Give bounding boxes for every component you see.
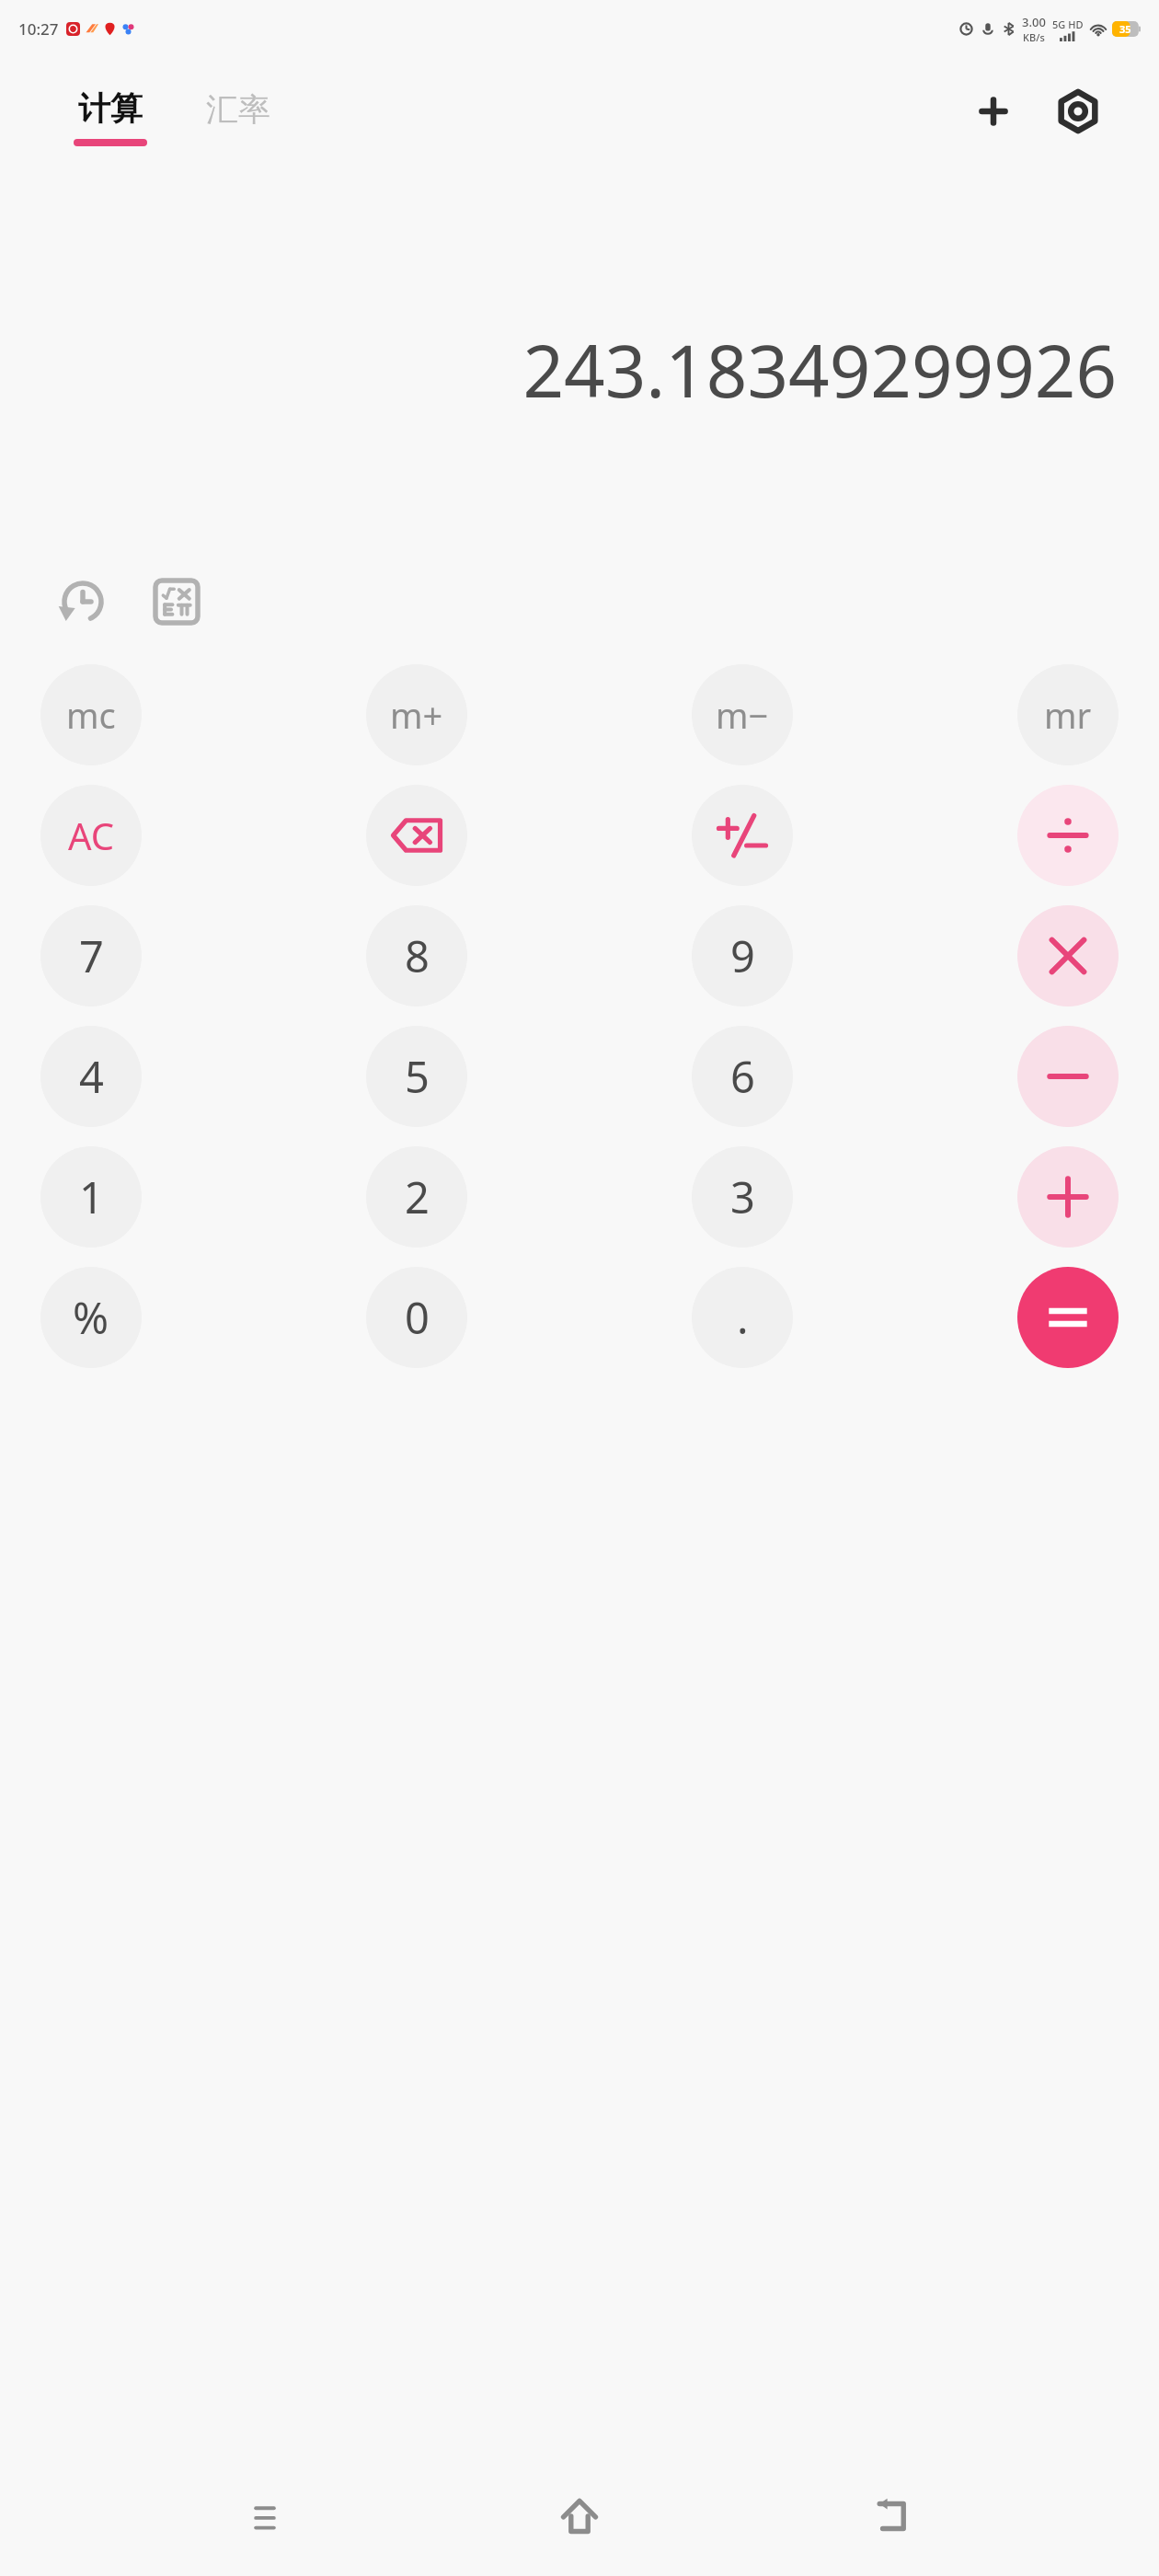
button[interactable]: Minus: [1017, 1026, 1119, 1127]
staticText: mr: [1044, 691, 1092, 739]
button[interactable]: Back: [844, 2466, 946, 2567]
staticText: 7: [79, 926, 104, 985]
staticText: mc: [66, 691, 116, 739]
staticText: 10:27: [18, 18, 59, 40]
staticText: 8: [405, 926, 430, 985]
button[interactable]: 2: [366, 1146, 467, 1248]
button[interactable]: Home: [529, 2466, 630, 2567]
staticText: 9: [730, 926, 755, 985]
button[interactable]: Fullscreen: [958, 76, 1028, 146]
staticText: AC: [68, 811, 115, 860]
button[interactable]: Multiply: [1017, 905, 1119, 1006]
staticText: 3.00: [1022, 14, 1046, 30]
staticText: 计算: [78, 88, 143, 129]
staticText: KB/s: [1023, 30, 1045, 44]
button[interactable]: Equals: [1017, 1267, 1119, 1368]
button[interactable]: m−: [692, 664, 793, 765]
staticText: 243.18349299926: [522, 321, 1117, 419]
staticText: 3: [730, 1167, 755, 1226]
staticText: 2: [405, 1167, 430, 1226]
button[interactable]: Backspace: [366, 785, 467, 886]
button[interactable]: Plus: [1017, 1146, 1119, 1248]
button[interactable]: mr: [1017, 664, 1119, 765]
staticText: 5: [405, 1047, 430, 1106]
button[interactable]: 9: [692, 905, 793, 1006]
button[interactable]: 3: [692, 1146, 793, 1248]
button[interactable]: 计算: [70, 88, 151, 146]
button[interactable]: 7: [40, 905, 142, 1006]
button[interactable]: AC: [40, 785, 142, 886]
button[interactable]: %: [40, 1267, 142, 1368]
button[interactable]: 0: [366, 1267, 467, 1368]
staticText: m+: [390, 691, 443, 739]
staticText: 6: [730, 1047, 755, 1106]
button[interactable]: Settings: [1043, 76, 1113, 146]
staticText: .: [737, 1288, 749, 1347]
button[interactable]: .: [692, 1267, 793, 1368]
button[interactable]: History: [44, 563, 121, 640]
button[interactable]: Scientific mode: [138, 563, 215, 640]
staticText: 4: [79, 1047, 104, 1106]
button[interactable]: Divide: [1017, 785, 1119, 886]
staticText: 5G HD: [1052, 17, 1084, 31]
button[interactable]: Plus minus: [692, 785, 793, 886]
button[interactable]: Recent apps: [214, 2466, 316, 2567]
staticText: 汇率: [206, 89, 270, 130]
button[interactable]: 6: [692, 1026, 793, 1127]
staticText: %: [73, 1288, 109, 1347]
staticText: 0: [405, 1288, 430, 1347]
button[interactable]: 汇率: [202, 98, 274, 138]
button[interactable]: 1: [40, 1146, 142, 1248]
button[interactable]: 8: [366, 905, 467, 1006]
button[interactable]: 5: [366, 1026, 467, 1127]
button[interactable]: m+: [366, 664, 467, 765]
staticText: 1: [79, 1167, 104, 1226]
staticText: m−: [716, 691, 769, 739]
staticText: 35: [1119, 22, 1131, 36]
button[interactable]: mc: [40, 664, 142, 765]
button[interactable]: 4: [40, 1026, 142, 1127]
